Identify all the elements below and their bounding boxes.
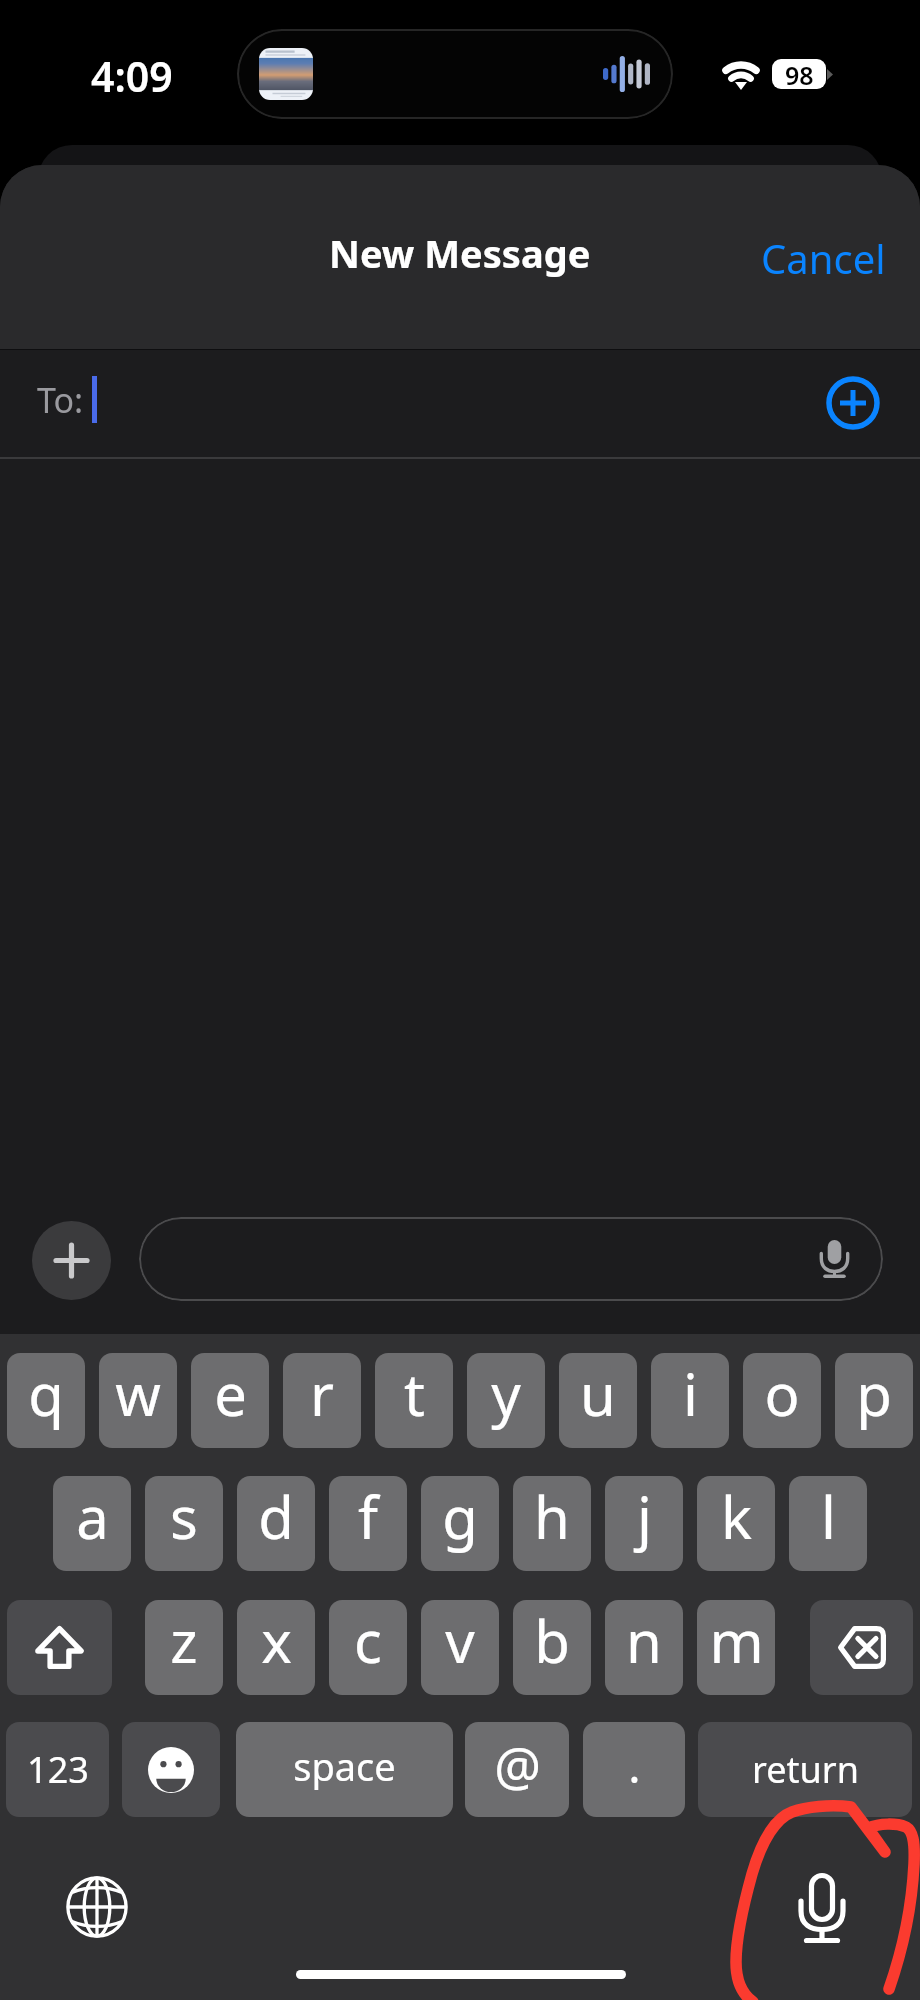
button[interactable]: r [283,1353,361,1448]
button[interactable]: @ [465,1722,569,1817]
button[interactable]: k [697,1476,775,1571]
button[interactable]: s [145,1476,223,1571]
staticText: Cancel [761,231,886,285]
staticText: m [709,1601,764,1680]
button[interactable]: 123 [6,1722,109,1817]
button[interactable]: f [329,1476,407,1571]
staticText: . [628,1734,641,1797]
staticText: w [115,1354,161,1433]
button[interactable]: . [583,1722,685,1817]
button[interactable]: c [329,1600,407,1695]
staticText: n [626,1601,662,1680]
staticText: c [354,1601,382,1680]
staticText: k [721,1477,752,1556]
staticText: r [310,1354,334,1433]
button[interactable]: space [236,1722,453,1817]
button[interactable]: i [651,1353,729,1448]
button[interactable]: j [605,1476,683,1571]
button[interactable]: b [513,1600,591,1695]
button[interactable]: o [743,1353,821,1448]
staticText: return [752,1745,859,1794]
button[interactable] [122,1722,220,1817]
staticText: y [491,1354,521,1433]
button[interactable]: e [191,1353,269,1448]
button[interactable]: n [605,1600,683,1695]
staticText: h [534,1477,570,1556]
staticText: p [856,1354,892,1433]
button[interactable]: Add attachment [32,1221,111,1300]
staticText: To: [37,377,84,423]
button[interactable] [139,1217,883,1301]
button[interactable]: q [7,1353,85,1448]
button[interactable]: g [421,1476,499,1571]
staticText: a [76,1477,109,1556]
button[interactable]: y [467,1353,545,1448]
staticText: g [442,1477,478,1556]
staticText: 4:09 [91,48,173,104]
staticText: New Message [329,227,591,279]
button[interactable]: w [99,1353,177,1448]
button[interactable]: t [375,1353,453,1448]
staticText: 123 [27,1745,89,1794]
staticText: 98 [785,59,814,88]
button[interactable]: Add contact [826,376,880,430]
staticText: f [358,1477,378,1556]
button[interactable]: return [698,1722,912,1817]
button[interactable] [810,1600,913,1695]
staticText: e [214,1354,247,1433]
staticText: s [170,1477,198,1556]
button[interactable]: z [145,1600,223,1695]
staticText: space [293,1740,396,1792]
staticText: z [170,1601,198,1680]
button[interactable]: h [513,1476,591,1571]
staticText: o [764,1354,800,1433]
staticText: @ [494,1730,541,1801]
button[interactable]: p [835,1353,913,1448]
staticText: x [261,1601,292,1680]
button[interactable]: l [789,1476,867,1571]
staticText: d [258,1477,294,1556]
staticText: l [821,1477,836,1556]
button[interactable]: d [237,1476,315,1571]
button[interactable] [7,1600,112,1695]
button[interactable]: m [697,1600,775,1695]
button[interactable]: Change keyboard [65,1875,129,1939]
staticText: i [683,1354,698,1433]
staticText: b [534,1601,570,1680]
button[interactable]: Cancel [723,223,920,293]
staticText: u [580,1354,616,1433]
button[interactable]: v [421,1600,499,1695]
staticText: j [637,1477,652,1556]
button[interactable]: a [53,1476,131,1571]
button[interactable]: u [559,1353,637,1448]
staticText: q [28,1354,64,1433]
staticText: t [404,1354,425,1433]
staticText: v [445,1601,475,1680]
button[interactable]: Dictate [800,1875,844,1947]
button[interactable]: x [237,1600,315,1695]
